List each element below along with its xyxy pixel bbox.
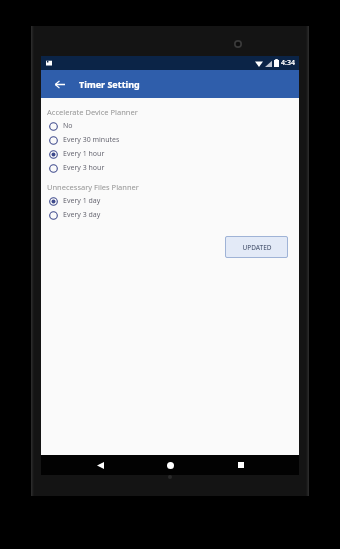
button[interactable]: No xyxy=(41,119,299,133)
button[interactable]: Every 30 minutes xyxy=(41,133,299,147)
staticText: 4:34 xyxy=(281,58,295,68)
button[interactable]: Home xyxy=(158,455,182,475)
staticText: Unnecessary Files Planner xyxy=(47,182,139,192)
staticText: No xyxy=(63,121,73,131)
staticText: Every 3 hour xyxy=(63,163,105,173)
staticText: Timer Setting xyxy=(79,78,140,90)
staticText: Accelerate Device Planner xyxy=(47,107,138,117)
button[interactable]: Every 3 hour xyxy=(41,161,299,175)
button[interactable]: UPDATED xyxy=(225,236,288,258)
button[interactable]: Back xyxy=(49,74,69,94)
staticText: Every 1 hour xyxy=(63,149,105,159)
button[interactable]: Every 3 day xyxy=(41,208,299,222)
staticText: Every 30 minutes xyxy=(63,135,120,145)
button[interactable]: Every 1 hour xyxy=(41,147,299,161)
button[interactable]: Back xyxy=(88,455,112,475)
staticText: UPDATED xyxy=(242,243,272,252)
staticText: Every 1 day xyxy=(63,196,101,206)
button[interactable]: Recent apps xyxy=(229,455,253,475)
button[interactable]: Every 1 day xyxy=(41,194,299,208)
staticText: Every 3 day xyxy=(63,210,101,220)
